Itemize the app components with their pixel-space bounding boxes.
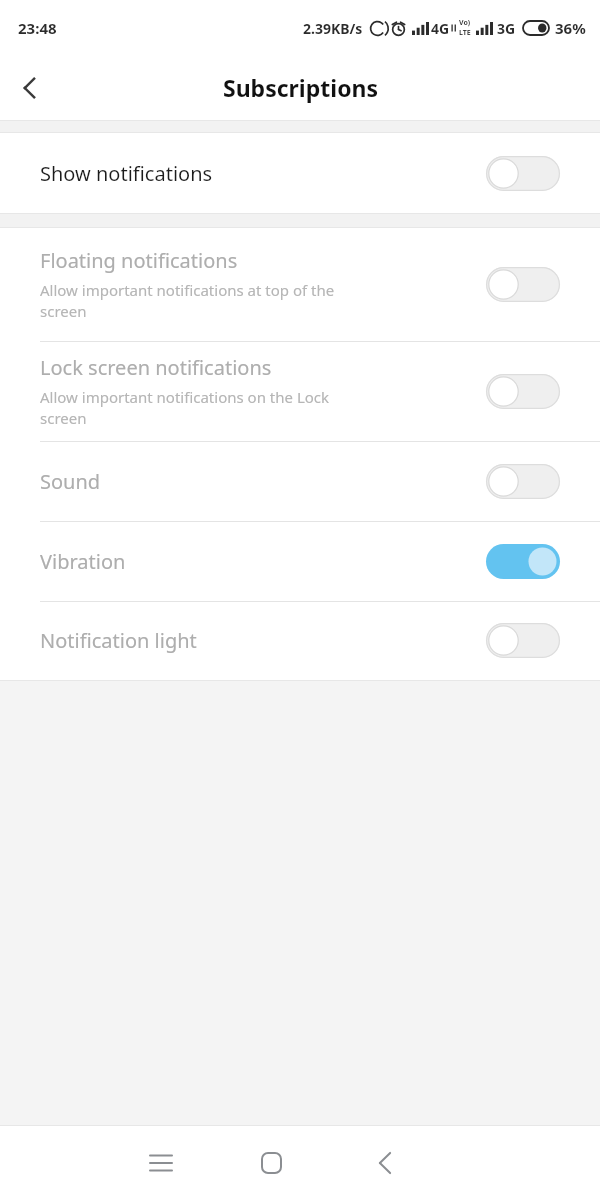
staticText: Vibration bbox=[40, 548, 126, 575]
button[interactable]: Toggle off bbox=[486, 623, 560, 658]
button[interactable]: Show notifications bbox=[0, 133, 600, 213]
staticText: Subscriptions bbox=[223, 72, 378, 103]
staticText: Lock screen notifications bbox=[40, 354, 272, 381]
button[interactable]: Back bbox=[0, 58, 60, 118]
button[interactable]: Sound bbox=[0, 441, 600, 521]
button[interactable]: Vibration bbox=[0, 521, 600, 601]
button[interactable]: Toggle off bbox=[486, 156, 560, 191]
staticText: Show notifications bbox=[40, 160, 213, 187]
staticText: Allow important notifications on the Loc… bbox=[40, 387, 330, 429]
staticText: Notification light bbox=[40, 627, 197, 654]
button[interactable]: Toggle off bbox=[486, 267, 560, 302]
staticText: 2.39KB/s bbox=[303, 19, 363, 38]
staticText: 4G bbox=[431, 19, 450, 38]
button[interactable]: Home bbox=[243, 1135, 299, 1191]
staticText: Floating notifications bbox=[40, 247, 238, 274]
button[interactable]: Lock screen notifications bbox=[0, 341, 600, 441]
staticText: LTE bbox=[459, 28, 471, 38]
staticText: 23:48 bbox=[18, 18, 57, 38]
button[interactable]: Toggle off bbox=[486, 374, 560, 409]
button[interactable]: Back bbox=[357, 1135, 413, 1191]
staticText: 3G bbox=[497, 19, 516, 38]
button[interactable]: Recent apps bbox=[133, 1135, 189, 1191]
staticText: Sound bbox=[40, 468, 101, 495]
button[interactable]: Toggle on bbox=[486, 544, 560, 579]
staticText: 36% bbox=[555, 18, 586, 38]
button[interactable]: Floating notifications bbox=[0, 228, 600, 341]
staticText: Vo) bbox=[459, 18, 471, 28]
button[interactable]: Notification light bbox=[0, 601, 600, 680]
button[interactable]: Toggle off bbox=[486, 464, 560, 499]
staticText: Allow important notifications at top of … bbox=[40, 280, 335, 322]
